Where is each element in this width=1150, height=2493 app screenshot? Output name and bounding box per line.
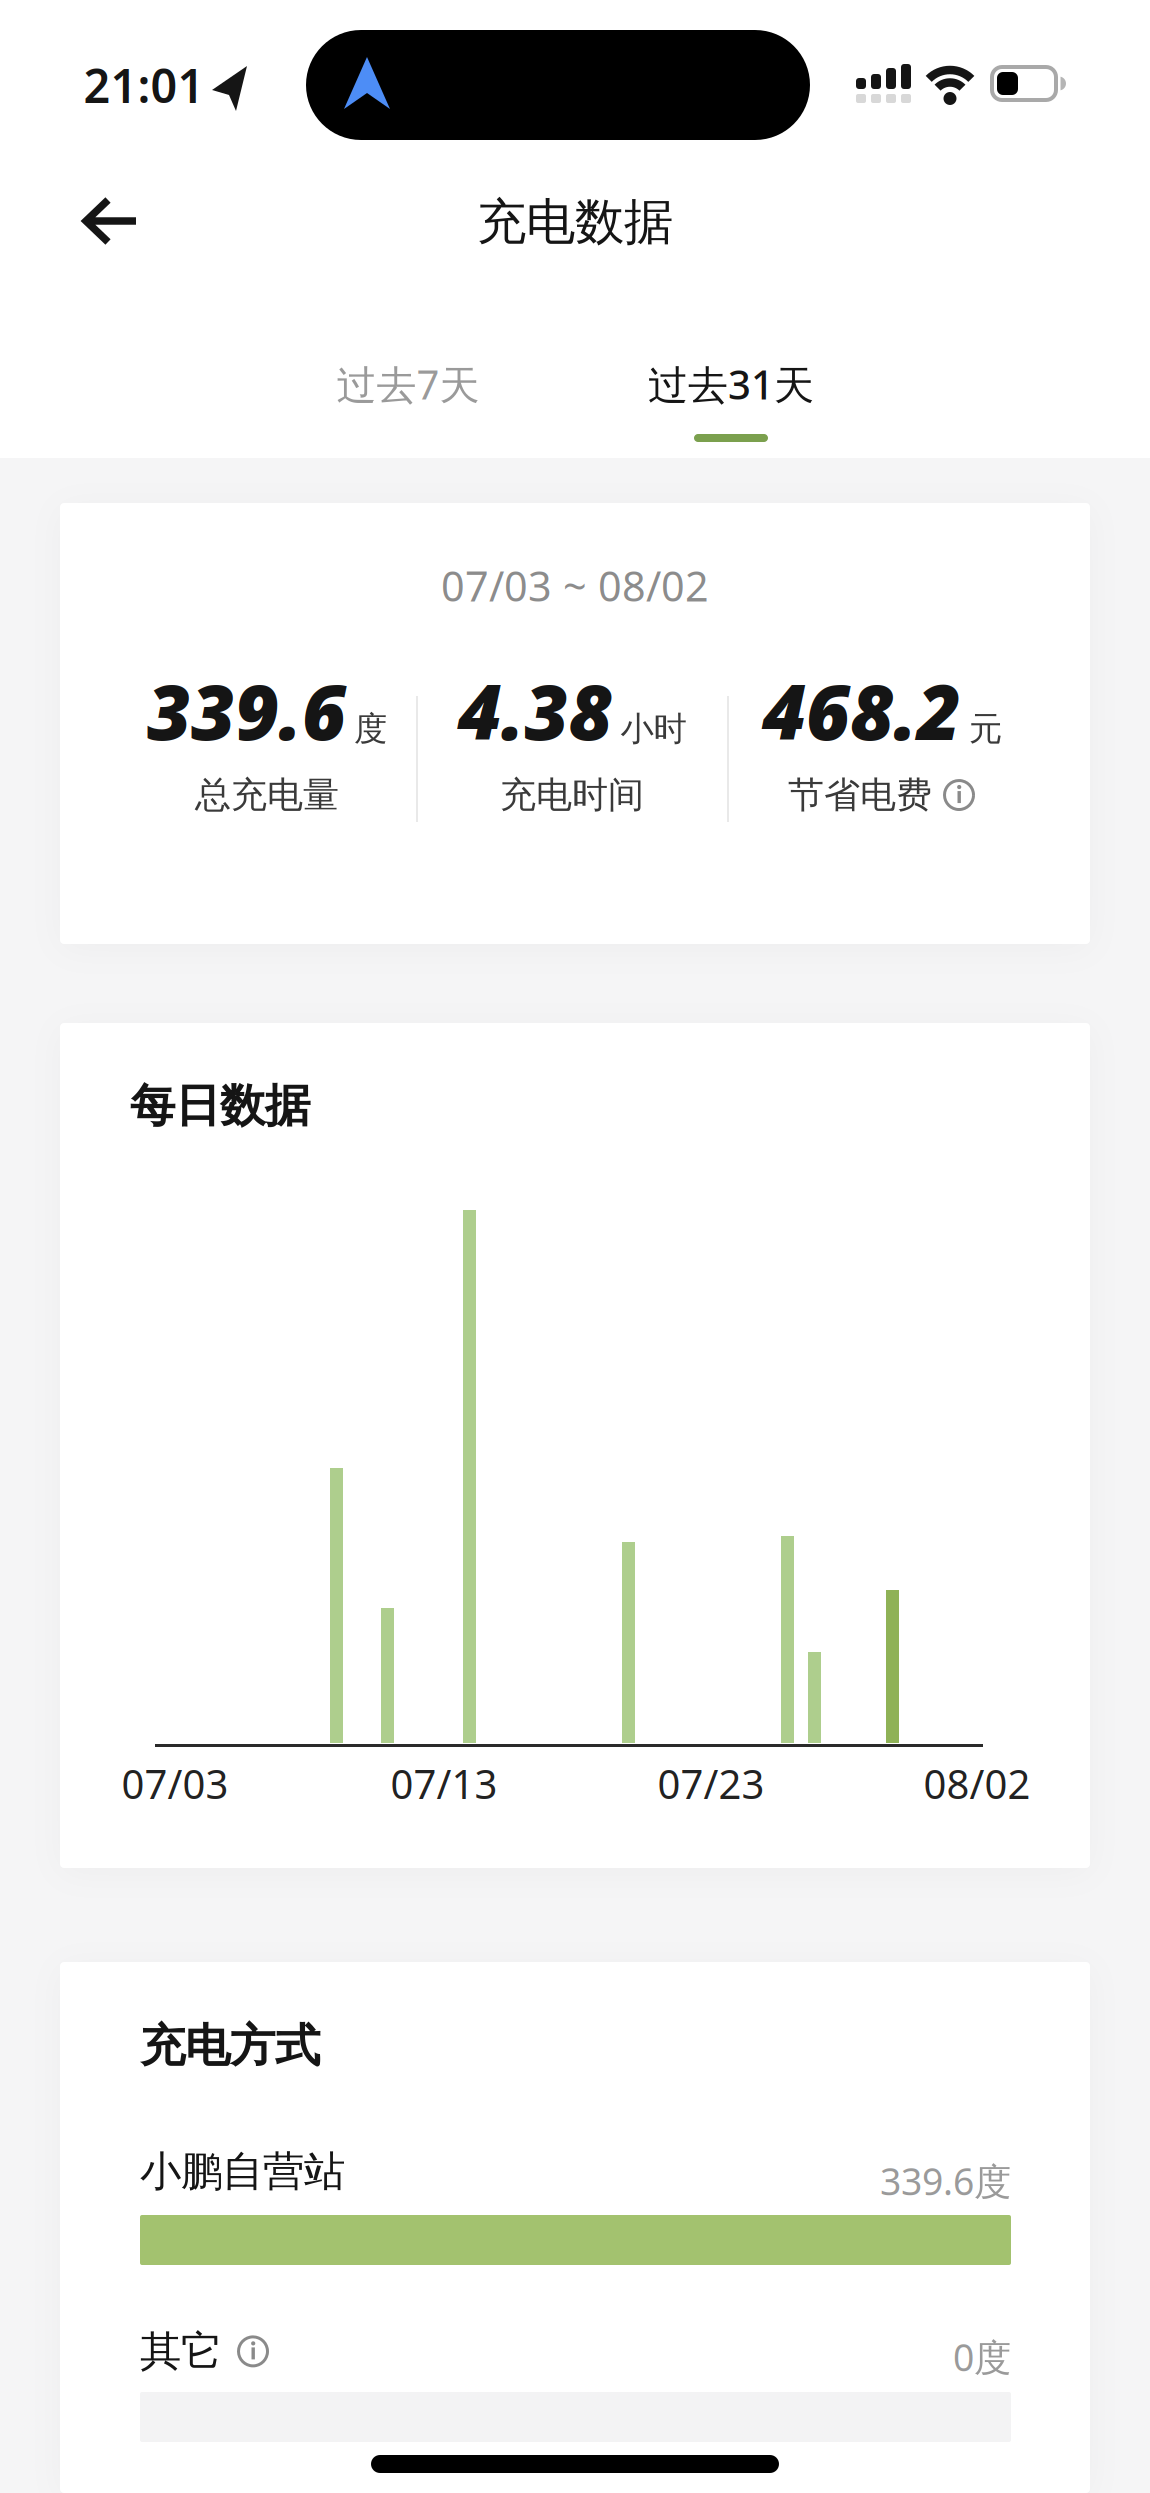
staticText: 充电时间: [500, 773, 644, 817]
button[interactable]: [942, 778, 976, 812]
staticText: 07/13: [390, 1757, 497, 1810]
staticText: 4.38: [457, 660, 612, 761]
staticText: 08/02: [923, 1757, 1030, 1810]
staticText: 过去7天: [336, 357, 479, 410]
staticText: 0度: [953, 2332, 1011, 2382]
staticText: 07/03: [121, 1757, 228, 1810]
staticText: 07/23: [657, 1757, 764, 1810]
staticText: 充电方式: [140, 2018, 320, 2074]
staticText: 充电数据: [477, 192, 673, 252]
button[interactable]: 过去31天: [591, 352, 871, 416]
button[interactable]: [78, 193, 1150, 2493]
button[interactable]: [236, 2334, 270, 2368]
staticText: 07/03 ~ 08/02: [441, 558, 709, 613]
button[interactable]: 过去7天: [268, 352, 548, 416]
staticText: 过去31天: [648, 357, 814, 410]
staticText: 其它: [140, 2326, 222, 2377]
staticText: 339.6度: [880, 2156, 1011, 2206]
staticText: 21:01: [83, 54, 204, 116]
staticText: 小鹏自营站: [140, 2146, 345, 2197]
staticText: 节省电费: [788, 773, 932, 817]
staticText: 468.2: [762, 660, 961, 761]
staticText: 度: [354, 708, 387, 749]
staticText: 每日数据: [130, 1078, 310, 1134]
staticText: 元: [969, 708, 1002, 749]
staticText: 总充电量: [195, 773, 339, 817]
staticText: 339.6: [147, 660, 346, 761]
staticText: 小时: [620, 708, 686, 749]
